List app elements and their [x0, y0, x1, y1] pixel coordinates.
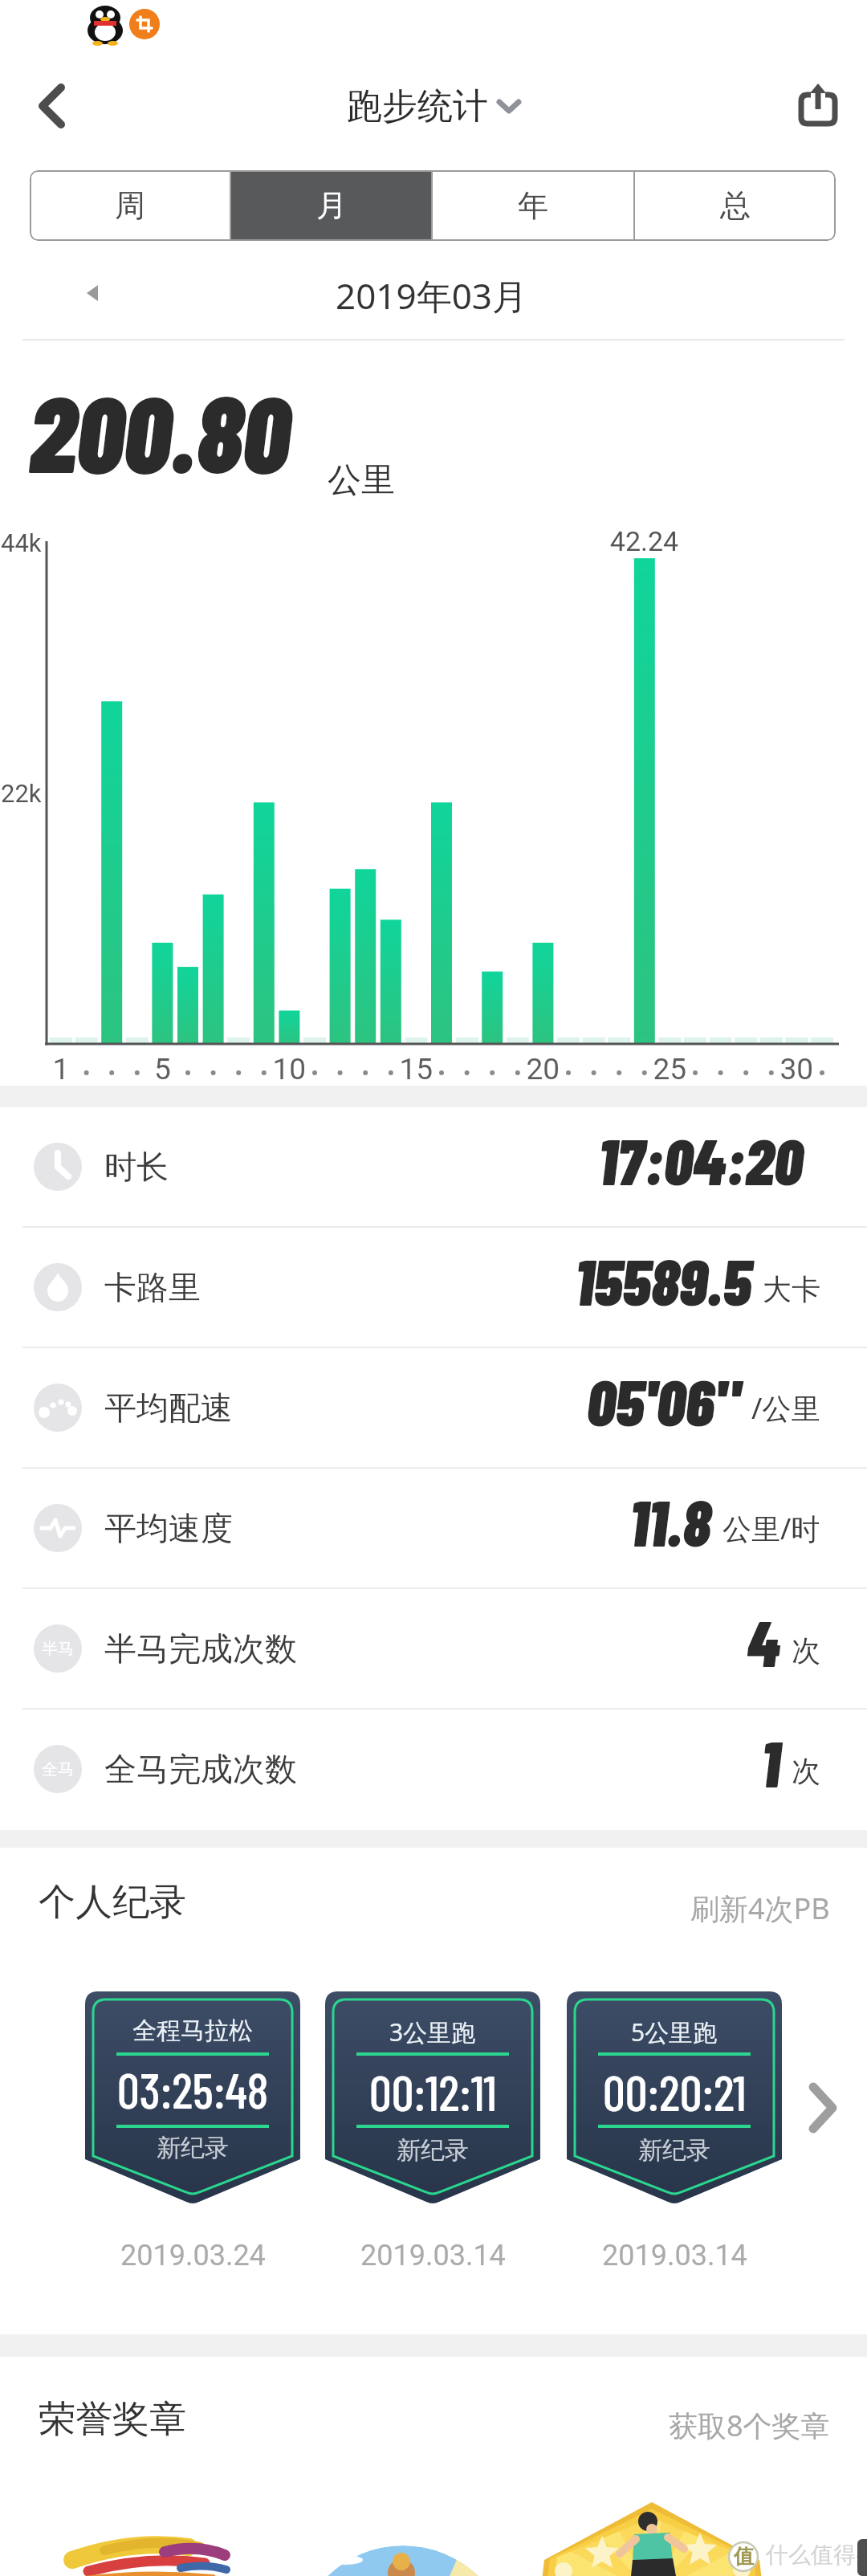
staticText: 00:20:21	[603, 2061, 747, 2121]
staticText: 11.8	[629, 1482, 711, 1559]
staticText: 2019.03.14	[360, 2239, 506, 2272]
button[interactable]: 年	[433, 170, 633, 241]
staticText: 公里/时	[722, 1509, 820, 1548]
staticText: 周	[115, 186, 145, 225]
button[interactable]	[64, 265, 120, 321]
button[interactable]: 平均速度	[0, 1469, 867, 1588]
button[interactable]: 全马	[0, 1710, 867, 1828]
button[interactable]: 全程马拉松	[85, 1991, 300, 2205]
staticText: 值	[734, 2544, 754, 2569]
button[interactable]	[799, 2076, 847, 2140]
staticText: 时长	[104, 1147, 169, 1187]
staticText: 卡路里	[104, 1267, 201, 1307]
button[interactable]: 周	[30, 170, 230, 241]
button[interactable]: 跑步统计	[305, 74, 562, 138]
staticText: 次	[792, 1753, 820, 1789]
staticText: 15589.5	[575, 1241, 751, 1319]
button[interactable]	[785, 74, 849, 138]
staticText: 17:04:20	[598, 1121, 803, 1198]
button[interactable]	[24, 74, 80, 138]
staticText: 新纪录	[638, 2135, 710, 2166]
button[interactable]: 获取8个奖章	[669, 2406, 830, 2445]
staticText: 2019.03.14	[602, 2239, 747, 2272]
button[interactable]: 总	[635, 170, 836, 241]
staticText: 什么值得买	[766, 2541, 867, 2569]
staticText: 年	[518, 186, 548, 225]
staticText: 大卡	[763, 1271, 820, 1307]
staticText: 2019.03.24	[120, 2239, 266, 2272]
button[interactable]: 5公里跑	[567, 1991, 782, 2205]
button[interactable]: 卡路里	[0, 1228, 867, 1347]
staticText: 3公里跑	[389, 2016, 476, 2048]
button[interactable]: 刷新4次PB	[690, 1889, 830, 1928]
staticText: /公里	[751, 1388, 820, 1428]
staticText: 1	[761, 1723, 780, 1800]
staticText: 总	[720, 186, 751, 225]
button[interactable]: 平均配速	[0, 1348, 867, 1467]
button[interactable]: 时长	[0, 1107, 867, 1226]
staticText: 荣誉奖章	[39, 2396, 186, 2443]
button[interactable]: 半马	[0, 1589, 867, 1708]
button[interactable]: 3公里跑	[325, 1991, 540, 2205]
staticText: 月	[316, 186, 347, 225]
staticText: 03:25:48	[117, 2059, 269, 2118]
staticText: 次	[792, 1632, 820, 1669]
staticText: 公里	[328, 459, 395, 502]
staticText: 05'06"	[587, 1362, 740, 1439]
staticText: 全马完成次数	[104, 1749, 297, 1789]
staticText: 200.80	[29, 367, 290, 494]
staticText: 跑步统计	[347, 84, 488, 128]
staticText: 个人纪录	[39, 1879, 186, 1926]
staticText: 半马完成次数	[104, 1628, 297, 1669]
staticText: 4	[747, 1603, 780, 1680]
staticText: 5公里跑	[631, 2016, 718, 2048]
staticText: 全马	[42, 1759, 74, 1779]
staticText: 新纪录	[397, 2135, 469, 2166]
staticText: 半马	[42, 1639, 74, 1659]
staticText: 00:12:11	[369, 2061, 497, 2121]
staticText: 全程马拉松	[132, 2016, 253, 2046]
staticText: 平均速度	[104, 1508, 233, 1548]
button[interactable]: 月	[231, 170, 431, 241]
staticText: 新纪录	[157, 2133, 229, 2163]
staticText: 平均配速	[104, 1388, 233, 1428]
staticText: 2019年03月	[336, 271, 528, 320]
